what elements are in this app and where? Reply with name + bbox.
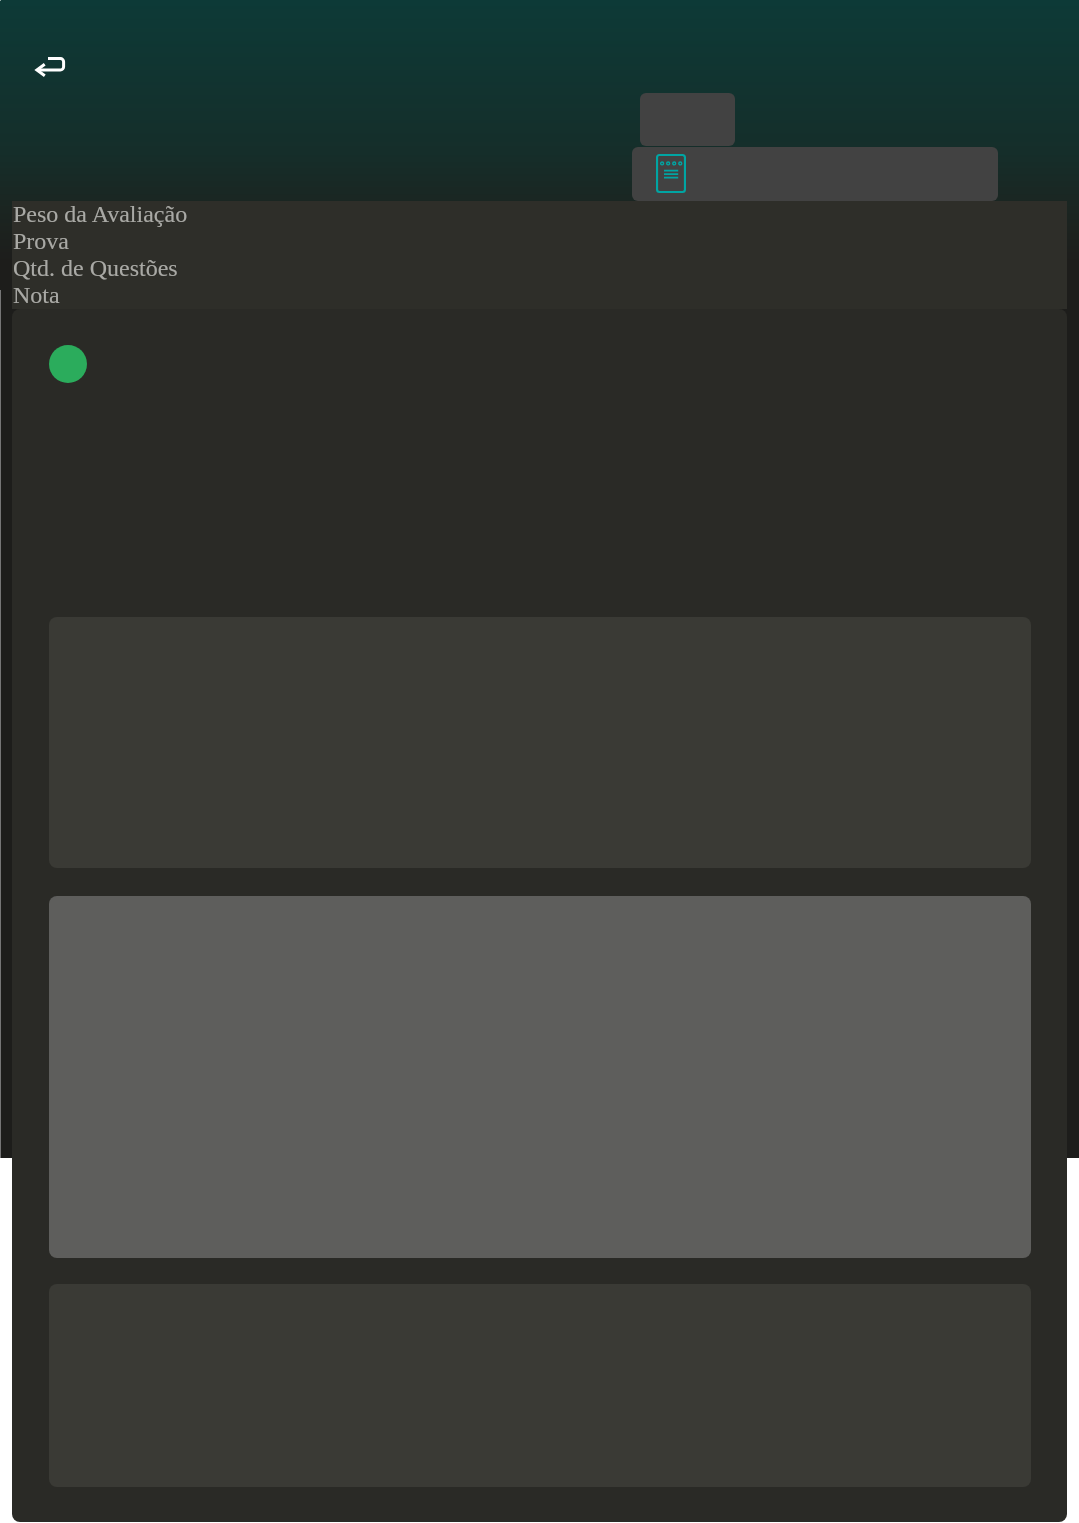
staticText: Prova	[13, 228, 69, 255]
staticText: Nota	[13, 282, 60, 309]
button[interactable]: Tab	[640, 93, 735, 146]
staticText: Qtd. de Questões	[13, 255, 178, 282]
staticText: Peso da Avaliação	[13, 201, 188, 228]
button[interactable]: Notes	[632, 147, 998, 201]
button[interactable]: Back	[14, 35, 78, 97]
